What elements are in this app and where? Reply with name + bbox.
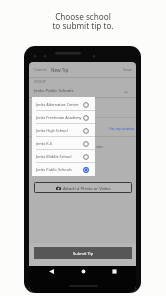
button[interactable]: Jenks Middle School (32, 150, 95, 163)
staticText: Jenks Freshman Academy (36, 115, 82, 120)
button[interactable]: Jenks Alternative Center (32, 98, 95, 111)
staticText: Attach a Photo or Video (63, 185, 111, 191)
button[interactable]: Recent apps (107, 264, 121, 278)
staticText: New Tip (51, 67, 69, 73)
staticText: Jenks Middle School (36, 154, 72, 159)
staticText: Jenks K-6 (36, 141, 53, 146)
staticText: Jenks Public Schools (36, 167, 72, 172)
staticText: Jenks Alternative Center (36, 102, 79, 107)
staticText: Jenks High School (36, 128, 68, 133)
button[interactable]: Back (44, 264, 58, 278)
button[interactable]: Jenks High School (32, 124, 95, 137)
staticText: Jenks Public Schools (34, 88, 74, 94)
button[interactable]: Cancel (34, 67, 47, 72)
button[interactable]: Cancel (29, 62, 136, 77)
button[interactable]: Jenks K-6 (32, 137, 95, 150)
button[interactable]: Attach a Photo or Video (34, 182, 132, 193)
staticText: this can… (89, 144, 105, 149)
button[interactable]: Save (123, 67, 132, 72)
staticText: Choose school to submit tip to. (52, 11, 114, 31)
button[interactable]: Jenks Public Schools (32, 163, 95, 176)
button[interactable]: Use my location (109, 126, 135, 131)
button[interactable]: Jenks Freshman Academy (32, 111, 95, 124)
staticText: Submit Tip (73, 251, 94, 256)
button[interactable]: Home (76, 264, 90, 278)
button[interactable]: Submit Tip (34, 247, 132, 259)
staticText: GROUP (34, 80, 47, 84)
